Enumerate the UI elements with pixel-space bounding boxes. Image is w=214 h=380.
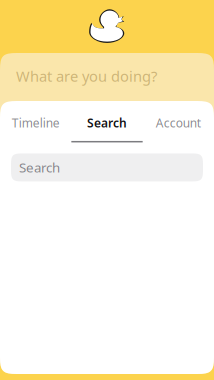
- staticText: Timeline: [12, 115, 60, 131]
- staticText: Search: [19, 159, 60, 176]
- button[interactable]: Search: [71, 101, 143, 142]
- button[interactable]: Search: [0, 142, 214, 181]
- staticText: Search: [87, 115, 127, 131]
- staticText: What are you doing?: [16, 66, 157, 86]
- button[interactable]: Account: [143, 101, 214, 142]
- staticText: Account: [156, 115, 201, 131]
- button[interactable]: Timeline: [0, 101, 71, 142]
